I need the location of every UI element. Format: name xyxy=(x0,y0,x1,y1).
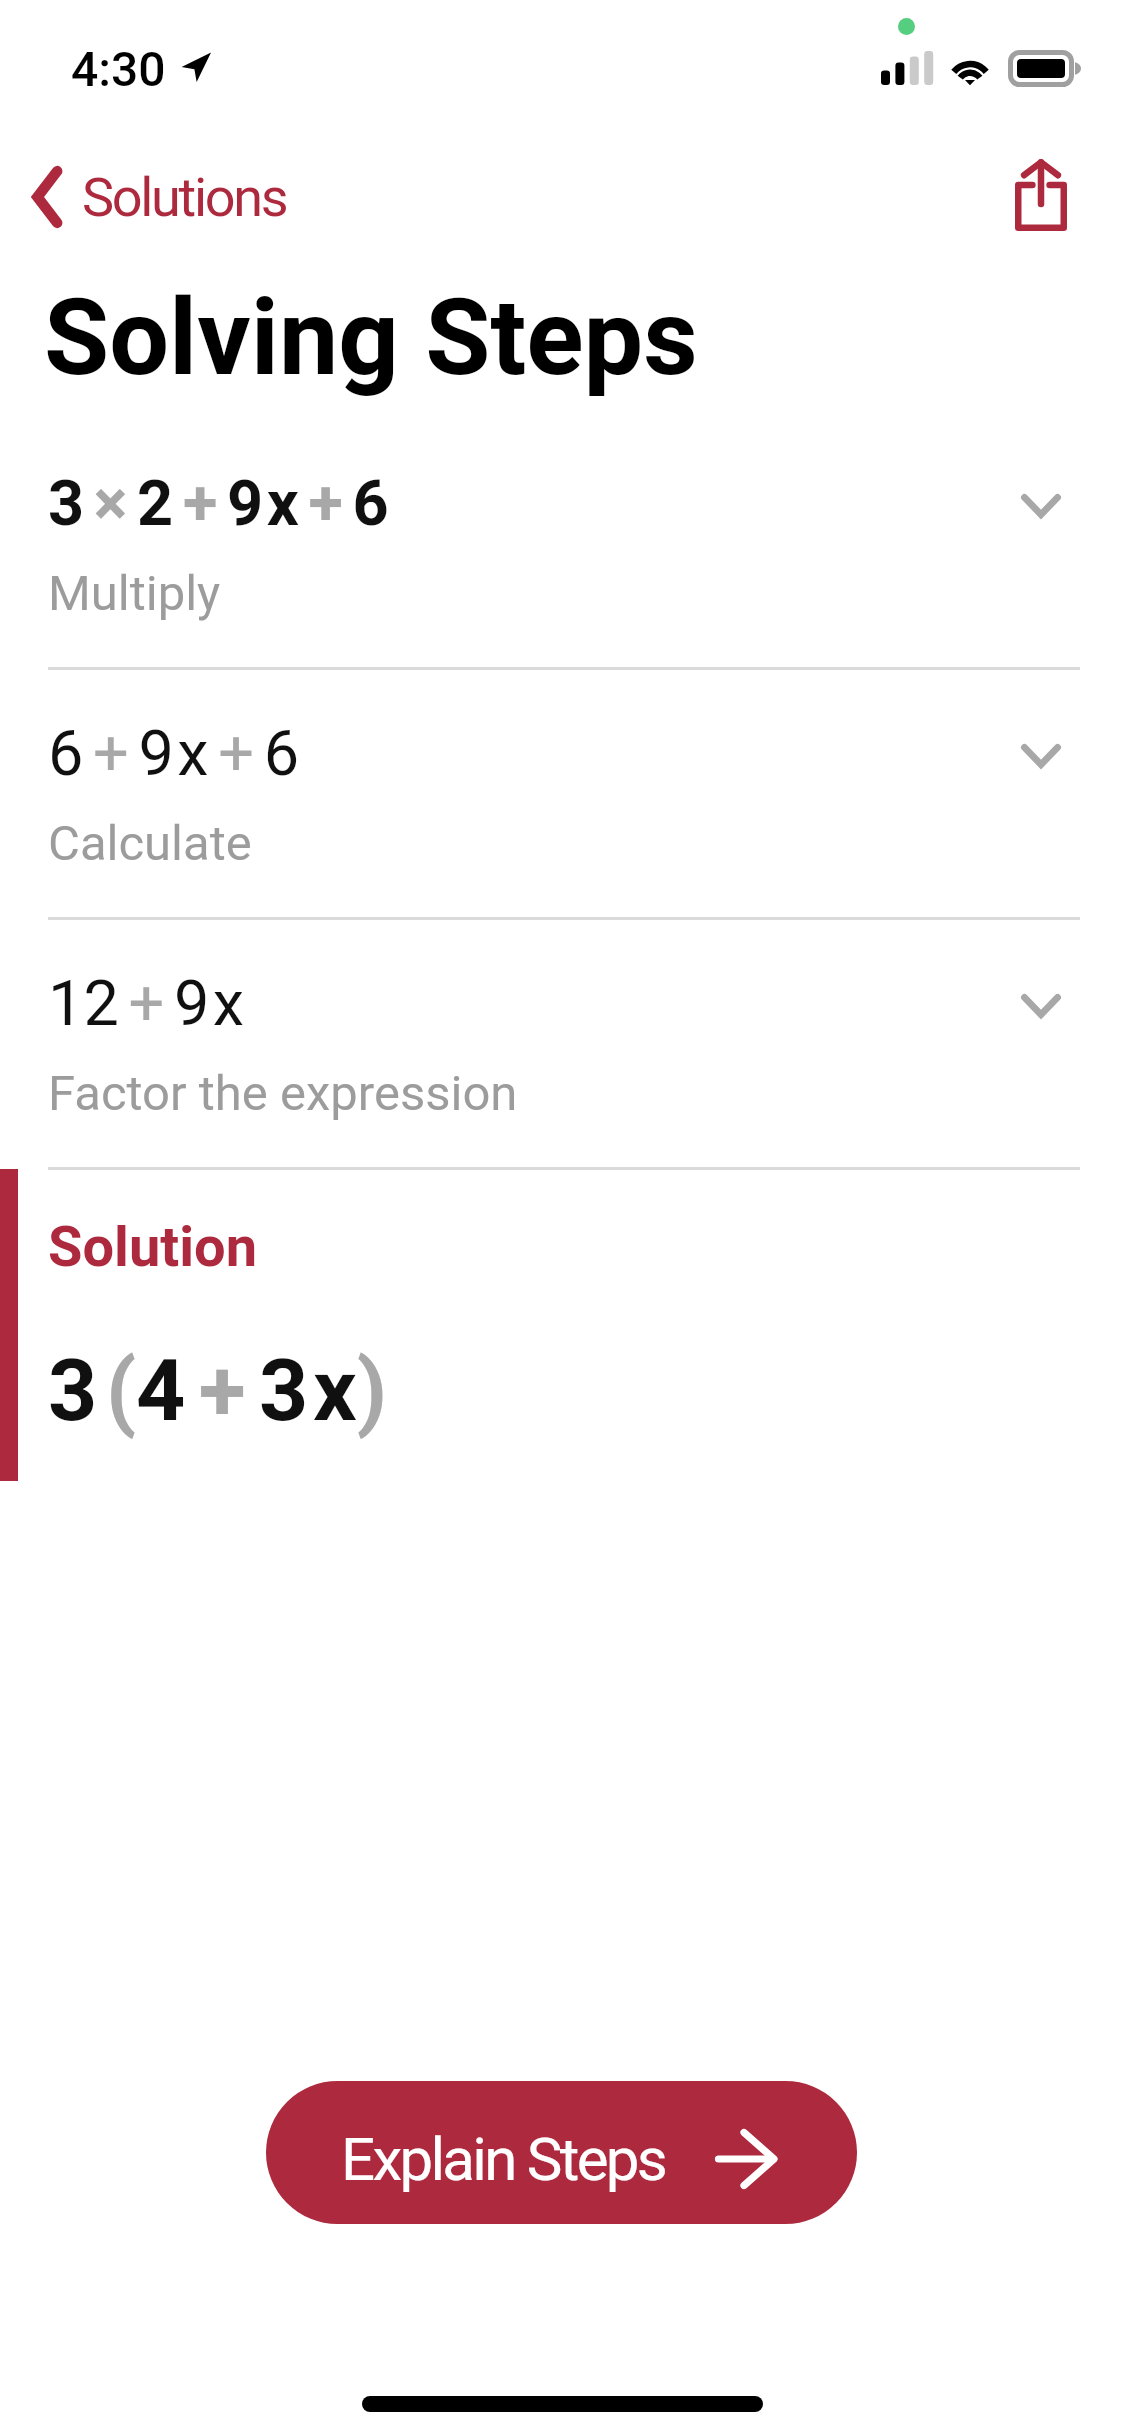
button[interactable]: Explain Steps xyxy=(266,2081,857,2224)
button[interactable]: Share xyxy=(986,135,1096,255)
button[interactable]: 12 + 9 x xyxy=(0,940,1125,1167)
staticText: 4:30 xyxy=(71,40,166,98)
staticText: Explain Steps xyxy=(341,2125,666,2195)
staticText: Calculate xyxy=(48,814,252,872)
button[interactable]: 6 + 9 x + 6 xyxy=(0,690,1125,917)
button[interactable]: 3 × 2 + 9 x + 6 xyxy=(0,440,1125,667)
staticText: 6 + 9 x + 6 xyxy=(48,724,300,788)
staticText: Multiply xyxy=(48,564,221,622)
button[interactable]: Solution xyxy=(0,1169,1125,1481)
button[interactable]: Solutions xyxy=(11,148,315,246)
staticText: Solution xyxy=(48,1214,258,1280)
staticText: 12 + 9 x xyxy=(48,974,245,1038)
staticText: Solving Steps xyxy=(44,277,698,399)
staticText: Factor the expression xyxy=(48,1064,518,1122)
staticText: 3 (4 + 3 x) xyxy=(48,1351,388,1439)
staticText: Solutions xyxy=(82,165,287,229)
staticText: 3 × 2 + 9 x + 6 xyxy=(48,474,389,538)
